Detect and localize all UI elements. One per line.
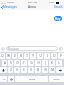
- staticText: R: [20, 54, 22, 58]
- staticText: Details: [54, 5, 63, 9]
- button[interactable]: J: [42, 60, 48, 66]
- staticText: O: [53, 54, 56, 58]
- button[interactable]: Send: [59, 47, 63, 51]
- staticText: B: [37, 68, 39, 72]
- staticText: 9:41 AM: [28, 1, 37, 4]
- staticText: Carrier: [7, 1, 15, 4]
- button[interactable]: Camera: [1, 47, 5, 51]
- button[interactable]: M: [49, 67, 55, 73]
- staticText: T: [26, 54, 28, 58]
- staticText: S: [10, 61, 12, 65]
- button[interactable]: Backspace: [56, 67, 64, 73]
- staticText: •••••: [1, 1, 6, 4]
- button[interactable]: X: [14, 67, 20, 73]
- staticText: 123: [2, 78, 6, 80]
- button[interactable]: B: [35, 67, 41, 73]
- staticText: W: [7, 54, 10, 58]
- button[interactable]: U: [37, 53, 43, 59]
- button[interactable]: E: [12, 53, 17, 59]
- staticText: 100%: [49, 1, 55, 4]
- button[interactable]: space: [15, 76, 48, 82]
- staticText: F: [23, 61, 25, 65]
- button[interactable]: O: [51, 53, 57, 59]
- staticText: D: [16, 61, 19, 65]
- button[interactable]: Hey: [54, 16, 62, 21]
- button[interactable]: C: [21, 67, 27, 73]
- button[interactable]: T: [24, 53, 29, 59]
- staticText: I: [47, 54, 48, 58]
- button[interactable]: return: [49, 76, 64, 82]
- button[interactable]: V: [28, 67, 34, 73]
- button[interactable]: D: [14, 60, 20, 66]
- staticText: H: [37, 61, 40, 65]
- staticText: iMessage: [7, 47, 19, 51]
- staticText: C: [23, 68, 25, 72]
- staticText: Q: [1, 54, 4, 58]
- staticText: P: [60, 54, 62, 58]
- button[interactable]: L: [56, 60, 62, 66]
- staticText: Hey: [55, 17, 61, 21]
- button[interactable]: G: [28, 60, 34, 66]
- staticText: X: [16, 68, 18, 72]
- button[interactable]: R: [18, 53, 23, 59]
- button[interactable]: I: [44, 53, 50, 59]
- button[interactable]: iMessage: [6, 46, 58, 51]
- staticText: U: [39, 54, 42, 58]
- button[interactable]: Y: [30, 53, 36, 59]
- staticText: J: [45, 61, 46, 65]
- button[interactable]: Messages: [0, 5, 18, 9]
- button[interactable]: S: [8, 60, 13, 66]
- button[interactable]: Details: [54, 5, 64, 9]
- button[interactable]: P: [58, 53, 64, 59]
- staticText: Y: [32, 54, 34, 58]
- button[interactable]: Q: [0, 53, 5, 59]
- staticText: N: [44, 68, 47, 72]
- button[interactable]: K: [49, 60, 55, 66]
- button[interactable]: Anna: [28, 5, 36, 9]
- staticText: space: [29, 78, 35, 81]
- staticText: Z: [10, 68, 12, 72]
- staticText: K: [51, 61, 53, 65]
- button[interactable]: H: [35, 60, 41, 66]
- button[interactable]: Shift: [0, 67, 7, 73]
- button[interactable]: Emoji: [8, 76, 14, 82]
- staticText: L: [58, 61, 60, 65]
- staticText: Messages: [3, 5, 17, 9]
- staticText: return: [53, 78, 60, 81]
- button[interactable]: 123: [0, 76, 7, 82]
- staticText: M: [51, 68, 54, 72]
- button[interactable]: W: [6, 53, 11, 59]
- button[interactable]: F: [21, 60, 27, 66]
- staticText: V: [30, 68, 32, 72]
- button[interactable]: Z: [8, 67, 13, 73]
- staticText: G: [30, 61, 33, 65]
- button[interactable]: N: [42, 67, 48, 73]
- staticText: E: [14, 54, 16, 58]
- button[interactable]: A: [2, 60, 7, 66]
- staticText: A: [4, 61, 6, 65]
